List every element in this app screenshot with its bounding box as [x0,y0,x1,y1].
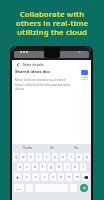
button[interactable]: q [13,153,18,161]
staticText: b [60,175,62,179]
button[interactable]: z [23,173,30,181]
staticText: t [46,155,48,159]
button[interactable]: h [56,163,62,171]
button[interactable]: Edit [81,70,88,75]
button[interactable]: s [24,163,30,171]
staticText: o [78,155,80,159]
button[interactable]: Shift [14,173,21,181]
button[interactable]: b [58,173,64,181]
staticText: Collaborate with others in real-time uti… [6,9,98,38]
button[interactable]: Yes [74,146,79,150]
staticText: ?123 [16,187,22,190]
button[interactable]: e [28,153,34,161]
button[interactable]: y [52,153,58,161]
staticText: f [42,165,44,169]
button[interactable]: t [44,153,50,161]
button[interactable]: i [68,153,74,161]
staticText: a [19,165,21,169]
button[interactable]: n [66,173,72,181]
staticText: h [58,165,60,169]
button[interactable]: d [32,163,38,171]
button[interactable]: j [64,163,70,171]
staticText: c [44,175,46,179]
button[interactable]: Send [80,184,88,192]
staticText: d [34,165,36,169]
button[interactable]: x [32,173,39,181]
staticText: q [15,155,17,159]
staticText: n [68,175,70,179]
button[interactable]: Ok [50,146,54,150]
staticText: l [83,165,84,169]
staticText: z [26,175,28,179]
staticText: Note details [23,62,44,67]
staticText: k [74,165,76,169]
button[interactable]: c [41,173,48,181]
staticText: g [50,165,52,169]
button[interactable]: u [60,153,66,161]
button[interactable]: m [74,173,80,181]
staticText: x [35,175,37,179]
button[interactable]: f [40,163,46,171]
staticText: e [30,155,32,159]
button[interactable]: r [36,153,42,161]
button[interactable]: g [48,163,54,171]
button[interactable]: w [20,153,26,161]
staticText: discuss [15,87,25,91]
staticText: y [54,155,56,159]
staticText: i [71,155,72,159]
button[interactable]: o [76,153,82,161]
staticText: r [38,155,40,159]
button[interactable]: Period [70,184,77,192]
button[interactable]: a [17,163,22,171]
button[interactable]: v [50,173,56,181]
button[interactable]: Backspace [82,173,89,181]
button[interactable]: Back [14,61,21,68]
staticText: . [73,186,74,190]
button[interactable]: Symbols [14,184,24,192]
staticText: u [62,155,64,159]
staticText: p [86,155,88,159]
staticText: w [22,155,25,159]
staticText: Shared ideas doc [15,69,51,75]
button[interactable]: Comma [26,184,33,192]
staticText: m [76,175,79,179]
staticText: j [67,165,68,169]
staticText: Maria: I think we should set up a shared [15,78,66,82]
staticText: s [26,165,28,169]
staticText: v [52,175,54,179]
button[interactable]: p [84,153,90,161]
button[interactable]: k [72,163,78,171]
staticText: Sonia: I really liked the idea proposed … [15,83,71,87]
button[interactable]: Thanks [23,146,33,150]
staticText: , [29,186,30,190]
button[interactable]: l [80,163,86,171]
